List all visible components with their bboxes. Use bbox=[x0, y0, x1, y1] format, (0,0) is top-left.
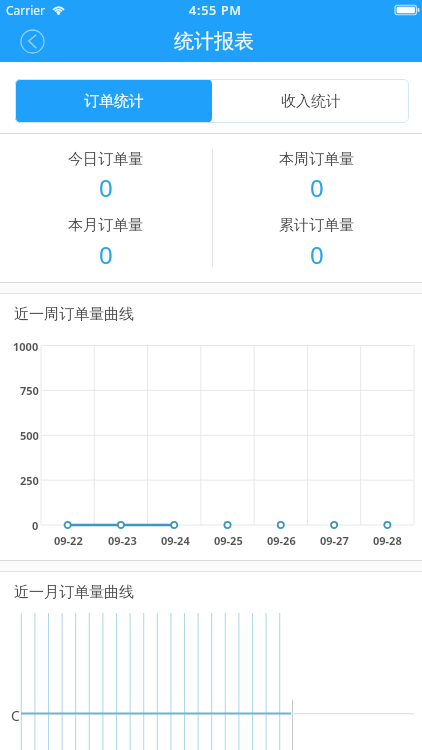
staticText: C bbox=[11, 706, 20, 725]
staticText: 订单统计 bbox=[84, 92, 144, 111]
staticText: 本周订单量 bbox=[279, 150, 354, 169]
staticText: 09-23 bbox=[108, 533, 137, 548]
staticText: 近一月订单量曲线 bbox=[14, 583, 134, 602]
staticText: 09-26 bbox=[267, 533, 296, 548]
staticText: 500 bbox=[20, 428, 39, 443]
staticText: 0 bbox=[32, 518, 39, 533]
staticText: 0 bbox=[310, 238, 324, 271]
staticText: 09-27 bbox=[320, 533, 349, 548]
staticText: 750 bbox=[20, 383, 39, 398]
staticText: 收入统计 bbox=[281, 92, 341, 111]
staticText: 0 bbox=[99, 238, 113, 271]
staticText: 09-25 bbox=[214, 533, 243, 548]
staticText: 0 bbox=[310, 171, 324, 204]
button[interactable]: 收入统计 bbox=[212, 79, 409, 123]
staticText: 今日订单量 bbox=[68, 150, 143, 169]
staticText: 09-28 bbox=[373, 533, 402, 548]
button[interactable]: 订单统计 bbox=[15, 79, 212, 123]
staticText: 1000 bbox=[13, 339, 39, 354]
staticText: 统计报表 bbox=[174, 29, 254, 54]
staticText: 近一周订单量曲线 bbox=[14, 305, 134, 324]
staticText: 4:55 PM bbox=[189, 2, 242, 19]
button[interactable]: Back bbox=[20, 29, 45, 54]
staticText: 250 bbox=[20, 473, 39, 488]
staticText: 09-24 bbox=[161, 533, 190, 548]
staticText: 累计订单量 bbox=[279, 216, 354, 235]
staticText: 0 bbox=[99, 171, 113, 204]
staticText: 09-22 bbox=[54, 533, 83, 548]
staticText: Carrier bbox=[6, 2, 46, 18]
staticText: 本月订单量 bbox=[68, 216, 143, 235]
